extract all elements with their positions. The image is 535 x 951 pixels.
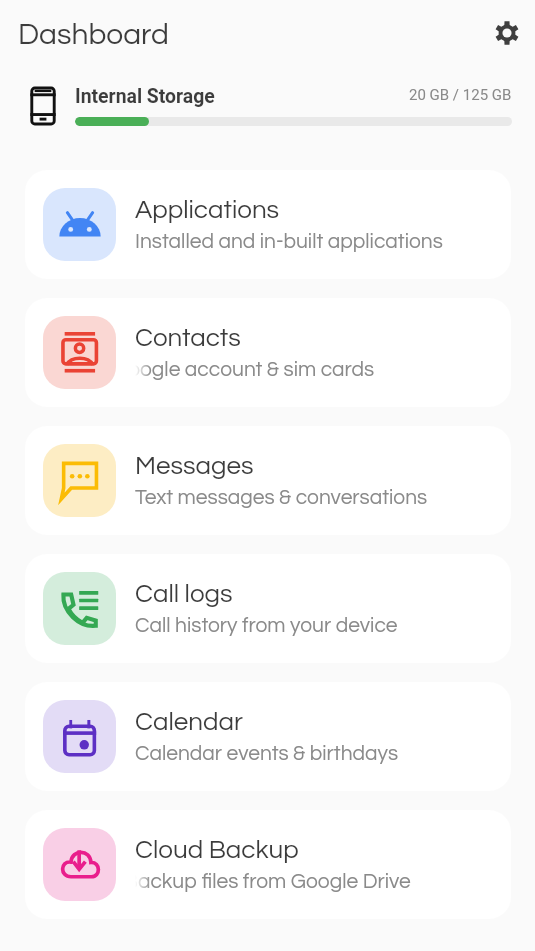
button[interactable]: Calendar bbox=[25, 682, 511, 791]
staticText: Calendar bbox=[135, 709, 243, 736]
staticText: 20 GB / 125 GB bbox=[409, 86, 512, 104]
staticText: Google account & sim cards bbox=[135, 359, 375, 381]
button[interactable]: Cloud Backup bbox=[25, 810, 511, 919]
button[interactable]: Applications bbox=[25, 170, 511, 279]
button[interactable]: Call logs bbox=[25, 554, 511, 663]
staticText: Applications bbox=[135, 197, 280, 224]
staticText: Installed and in-built applications bbox=[135, 231, 443, 253]
staticText: Contacts bbox=[135, 325, 241, 352]
staticText: Internal Storage bbox=[75, 85, 215, 108]
staticText: Text messages & conversations bbox=[135, 487, 428, 509]
staticText: Call logs bbox=[135, 581, 233, 608]
staticText: Cloud Backup bbox=[135, 837, 299, 864]
staticText: Call history from your device bbox=[135, 615, 398, 637]
staticText: Calendar events & birthdays bbox=[135, 743, 399, 765]
staticText: Dashboard bbox=[18, 19, 169, 50]
button[interactable]: Messages bbox=[25, 426, 511, 535]
staticText: Messages bbox=[135, 453, 254, 480]
staticText: Backup files from Google Drive bbox=[135, 871, 411, 893]
button[interactable]: Settings bbox=[487, 13, 527, 53]
button[interactable]: Contacts bbox=[25, 298, 511, 407]
